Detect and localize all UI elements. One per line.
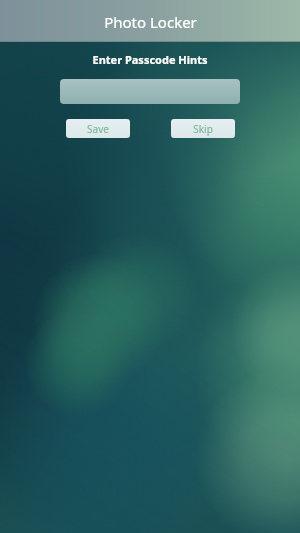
staticText: Enter Passcode Hints <box>0 52 300 67</box>
button[interactable]: Skip <box>171 119 235 138</box>
button[interactable]: Save <box>66 119 130 138</box>
staticText: Photo Locker <box>104 12 197 32</box>
staticText: Save <box>87 122 109 136</box>
staticText: Skip <box>193 122 213 136</box>
button[interactable]: Passcode hint input <box>60 79 240 104</box>
